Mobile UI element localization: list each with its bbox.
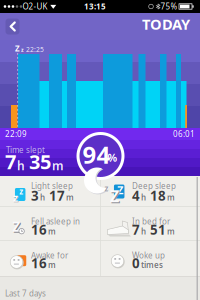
- staticText: 16: [31, 254, 47, 272]
- staticText: 94: [82, 139, 110, 170]
- staticText: O2-UK: [22, 1, 47, 12]
- staticText: 75%: [160, 1, 177, 12]
- staticText: Z: [12, 218, 20, 235]
- staticText: m: [48, 259, 56, 270]
- staticText: Awake for: [31, 250, 68, 261]
- staticText: 17: [49, 187, 65, 204]
- staticText: z: [14, 191, 19, 205]
- staticText: In bed for: [132, 216, 170, 227]
- staticText: z: [13, 190, 18, 205]
- staticText: 3: [31, 187, 39, 204]
- staticText: %: [107, 150, 117, 165]
- staticText: z: [105, 184, 109, 194]
- staticText: TODAY: [142, 14, 190, 34]
- staticText: Z: [13, 219, 21, 236]
- staticText: 22:25: [26, 45, 44, 54]
- staticText: 18: [150, 187, 166, 204]
- staticText: 0: [132, 254, 140, 272]
- staticText: 4: [132, 187, 140, 204]
- staticText: Z: [110, 185, 119, 207]
- staticText: m: [167, 226, 175, 237]
- staticText: times: [141, 259, 163, 270]
- button[interactable]: TODAY: [142, 14, 190, 34]
- staticText: Woke up: [132, 250, 165, 261]
- staticText: z: [19, 186, 23, 197]
- staticText: Time slept: [6, 145, 45, 155]
- staticText: 35: [29, 148, 51, 175]
- staticText: Light sleep: [31, 181, 73, 191]
- staticText: m: [167, 192, 175, 203]
- staticText: Z: [15, 43, 20, 54]
- staticText: 06:01: [173, 129, 195, 139]
- staticText: z: [21, 46, 24, 53]
- staticText: h: [17, 158, 25, 173]
- staticText: m: [52, 158, 64, 173]
- staticText: h: [141, 192, 146, 203]
- staticText: 7: [132, 221, 140, 238]
- staticText: Z: [117, 183, 123, 197]
- staticText: h: [141, 226, 146, 237]
- button[interactable]: [5, 18, 19, 34]
- staticText: Deep sleep: [132, 181, 176, 191]
- staticText: 13:15: [84, 1, 106, 12]
- staticText: z: [104, 183, 108, 194]
- staticText: 51: [150, 221, 166, 238]
- staticText: 16: [31, 221, 47, 238]
- staticText: m: [48, 226, 56, 237]
- staticText: h: [40, 192, 45, 203]
- staticText: 22:09: [5, 129, 27, 139]
- staticText: 7: [5, 148, 16, 175]
- staticText: Z: [111, 186, 120, 208]
- staticText: Last 7 days: [5, 288, 46, 299]
- staticText: Fell asleep in: [31, 216, 80, 227]
- staticText: m: [66, 192, 74, 203]
